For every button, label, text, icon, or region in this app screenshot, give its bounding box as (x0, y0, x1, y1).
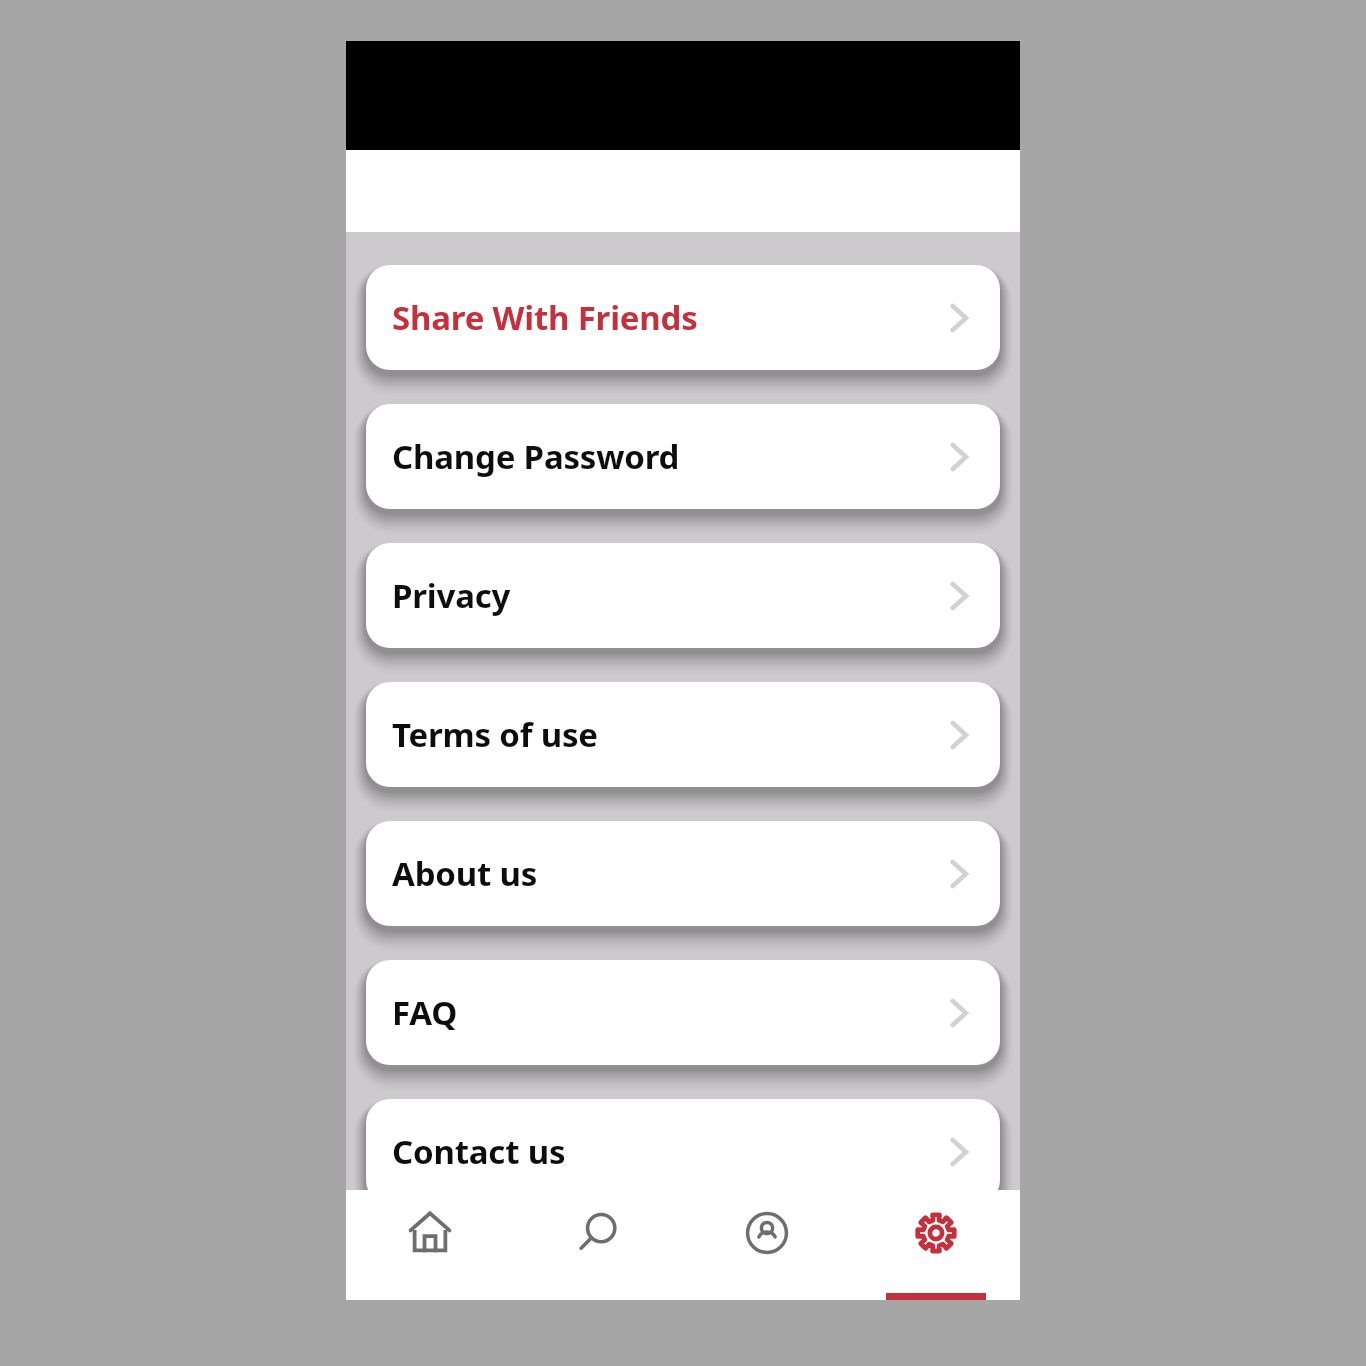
staticText: Contact us (392, 1129, 566, 1174)
staticText: Change Password (392, 434, 680, 479)
button[interactable]: Settings (851, 1190, 1020, 1300)
button[interactable]: Change Password (366, 404, 1000, 509)
button[interactable]: Search (514, 1190, 682, 1300)
button[interactable]: Home (346, 1190, 514, 1300)
button[interactable]: FAQ (366, 960, 1000, 1065)
button[interactable]: Terms of use (366, 682, 1000, 787)
button[interactable]: About us (366, 821, 1000, 926)
button[interactable]: Profile (682, 1190, 851, 1300)
staticText: Privacy (392, 573, 511, 618)
staticText: Terms of use (392, 712, 598, 757)
staticText: About us (392, 851, 538, 896)
staticText: Share With Friends (392, 295, 698, 340)
button[interactable]: Share With Friends (366, 265, 1000, 370)
staticText: FAQ (392, 990, 458, 1035)
button[interactable]: Contact us (366, 1099, 1000, 1204)
button[interactable]: Privacy (366, 543, 1000, 648)
